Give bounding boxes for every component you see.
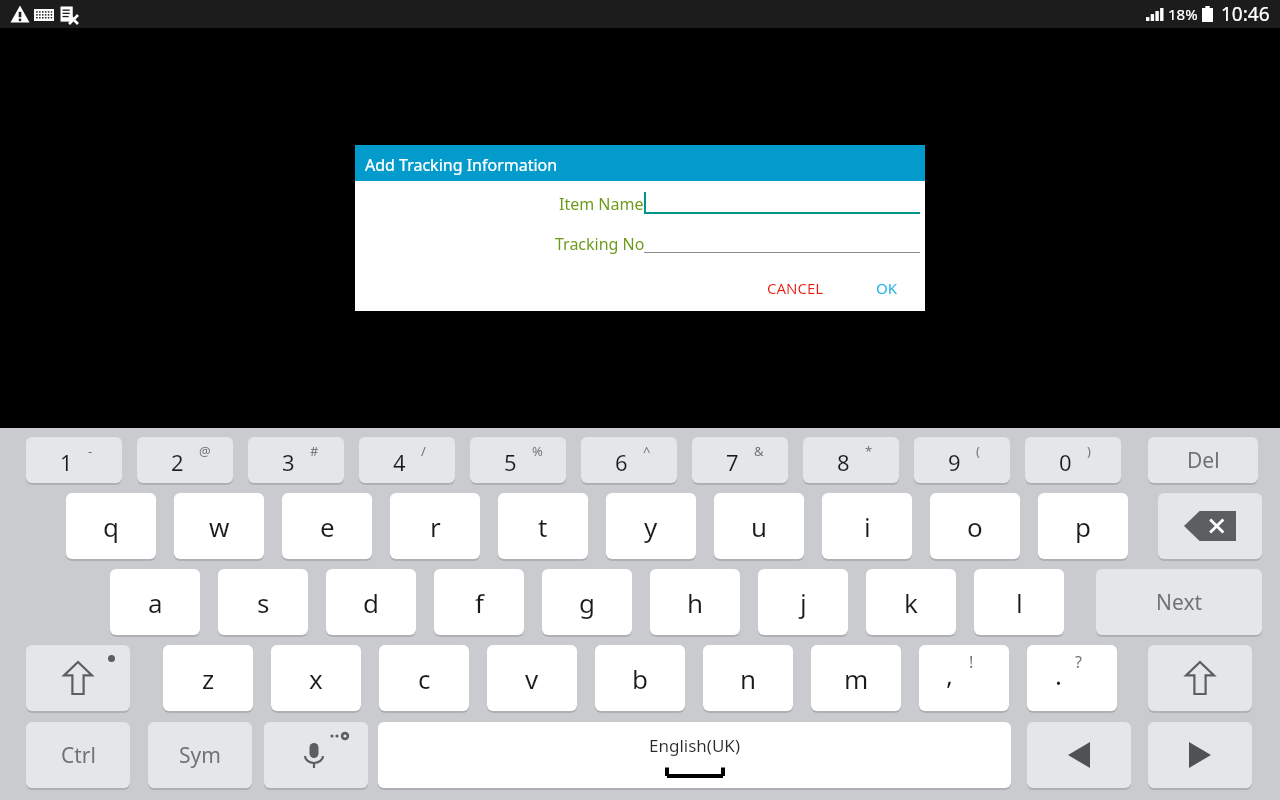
button[interactable]: CANCEL [755, 271, 836, 305]
staticText: t [538, 509, 548, 544]
staticText: % [532, 442, 543, 460]
staticText: 4 [393, 447, 406, 477]
button[interactable]: s [218, 569, 308, 635]
staticText: a [148, 585, 163, 620]
staticText: 9 [948, 447, 961, 477]
staticText: d [363, 585, 379, 620]
button[interactable]: 1 [26, 437, 122, 483]
staticText: - [88, 442, 93, 460]
staticText: Next [1156, 588, 1203, 617]
button[interactable]: b [595, 645, 685, 711]
button[interactable]: u [714, 493, 804, 559]
staticText: # [310, 442, 319, 460]
button[interactable]: m [811, 645, 901, 711]
other: Voice input [264, 722, 368, 788]
other: Shift [26, 645, 130, 711]
staticText: u [751, 509, 768, 544]
button[interactable]: OK [863, 271, 911, 305]
staticText: k [904, 585, 918, 620]
staticText: j [800, 585, 807, 620]
staticText: w [209, 509, 230, 544]
staticText: b [632, 661, 648, 696]
button[interactable]: 8 [803, 437, 899, 483]
button[interactable]: Next [1096, 569, 1262, 635]
staticText: 0 [1059, 447, 1072, 477]
staticText: ! [969, 651, 974, 673]
button[interactable]: Sym [148, 722, 252, 788]
staticText: * [865, 442, 873, 460]
button[interactable]: Ctrl [26, 722, 130, 788]
staticText: , [946, 657, 953, 692]
button[interactable]: Del [1148, 437, 1258, 483]
button[interactable]: z [163, 645, 253, 711]
staticText: i [864, 509, 871, 544]
button[interactable]: q [66, 493, 156, 559]
button[interactable]: g [542, 569, 632, 635]
button[interactable]: . [1027, 645, 1117, 711]
staticText: n [740, 661, 757, 696]
button[interactable]: 5 [470, 437, 566, 483]
other: Shift [1148, 645, 1252, 711]
button[interactable]: , [919, 645, 1009, 711]
button[interactable]: t [498, 493, 588, 559]
button[interactable] [26, 645, 130, 711]
button[interactable]: l [974, 569, 1064, 635]
button[interactable]: 2 [137, 437, 233, 483]
button[interactable]: n [703, 645, 793, 711]
staticText: 2 [171, 447, 184, 477]
staticText: o [967, 509, 983, 544]
button[interactable] [1027, 722, 1131, 788]
staticText: y [644, 509, 658, 544]
staticText: Tracking No [555, 233, 645, 255]
staticText: e [320, 509, 335, 544]
staticText: c [418, 661, 431, 696]
button[interactable]: x [271, 645, 361, 711]
button[interactable]: a [110, 569, 200, 635]
staticText: 6 [615, 447, 628, 477]
button[interactable]: 9 [914, 437, 1010, 483]
button[interactable]: English(UK) [378, 722, 1011, 788]
button[interactable]: h [650, 569, 740, 635]
button[interactable]: o [930, 493, 1020, 559]
button[interactable]: y [606, 493, 696, 559]
button[interactable]: 3 [248, 437, 344, 483]
staticText: 7 [726, 447, 739, 477]
button[interactable] [1148, 645, 1252, 711]
staticText: Ctrl [61, 741, 96, 770]
button[interactable] [1158, 493, 1262, 559]
other: Backspace [1158, 493, 1262, 559]
button[interactable]: w [174, 493, 264, 559]
staticText: ? [1075, 651, 1082, 673]
staticText: ) [1087, 442, 1091, 460]
button[interactable] [264, 722, 368, 788]
button[interactable]: 7 [692, 437, 788, 483]
staticText: Item Name [559, 193, 644, 215]
button[interactable]: v [487, 645, 577, 711]
staticText: q [103, 509, 119, 544]
button[interactable]: i [822, 493, 912, 559]
button[interactable]: f [434, 569, 524, 635]
button[interactable]: k [866, 569, 956, 635]
button[interactable]: c [379, 645, 469, 711]
staticText: 3 [282, 447, 295, 477]
staticText: s [257, 585, 270, 620]
staticText: Add Tracking Information [365, 154, 558, 176]
staticText: 5 [504, 447, 517, 477]
button[interactable]: p [1038, 493, 1128, 559]
staticText: l [1016, 585, 1023, 620]
button[interactable]: 4 [359, 437, 455, 483]
button[interactable]: 0 [1025, 437, 1121, 483]
button[interactable] [1148, 722, 1252, 788]
staticText: / [421, 442, 426, 460]
button[interactable]: r [390, 493, 480, 559]
button[interactable]: e [282, 493, 372, 559]
staticText: 18% [1168, 4, 1198, 24]
staticText: x [309, 661, 323, 696]
other: Move cursor right [1148, 722, 1252, 788]
button[interactable]: j [758, 569, 848, 635]
staticText: Del [1187, 446, 1220, 475]
staticText: OK [876, 278, 898, 298]
button[interactable]: 6 [581, 437, 677, 483]
button[interactable]: d [326, 569, 416, 635]
staticText: 10:46 [1221, 1, 1270, 27]
